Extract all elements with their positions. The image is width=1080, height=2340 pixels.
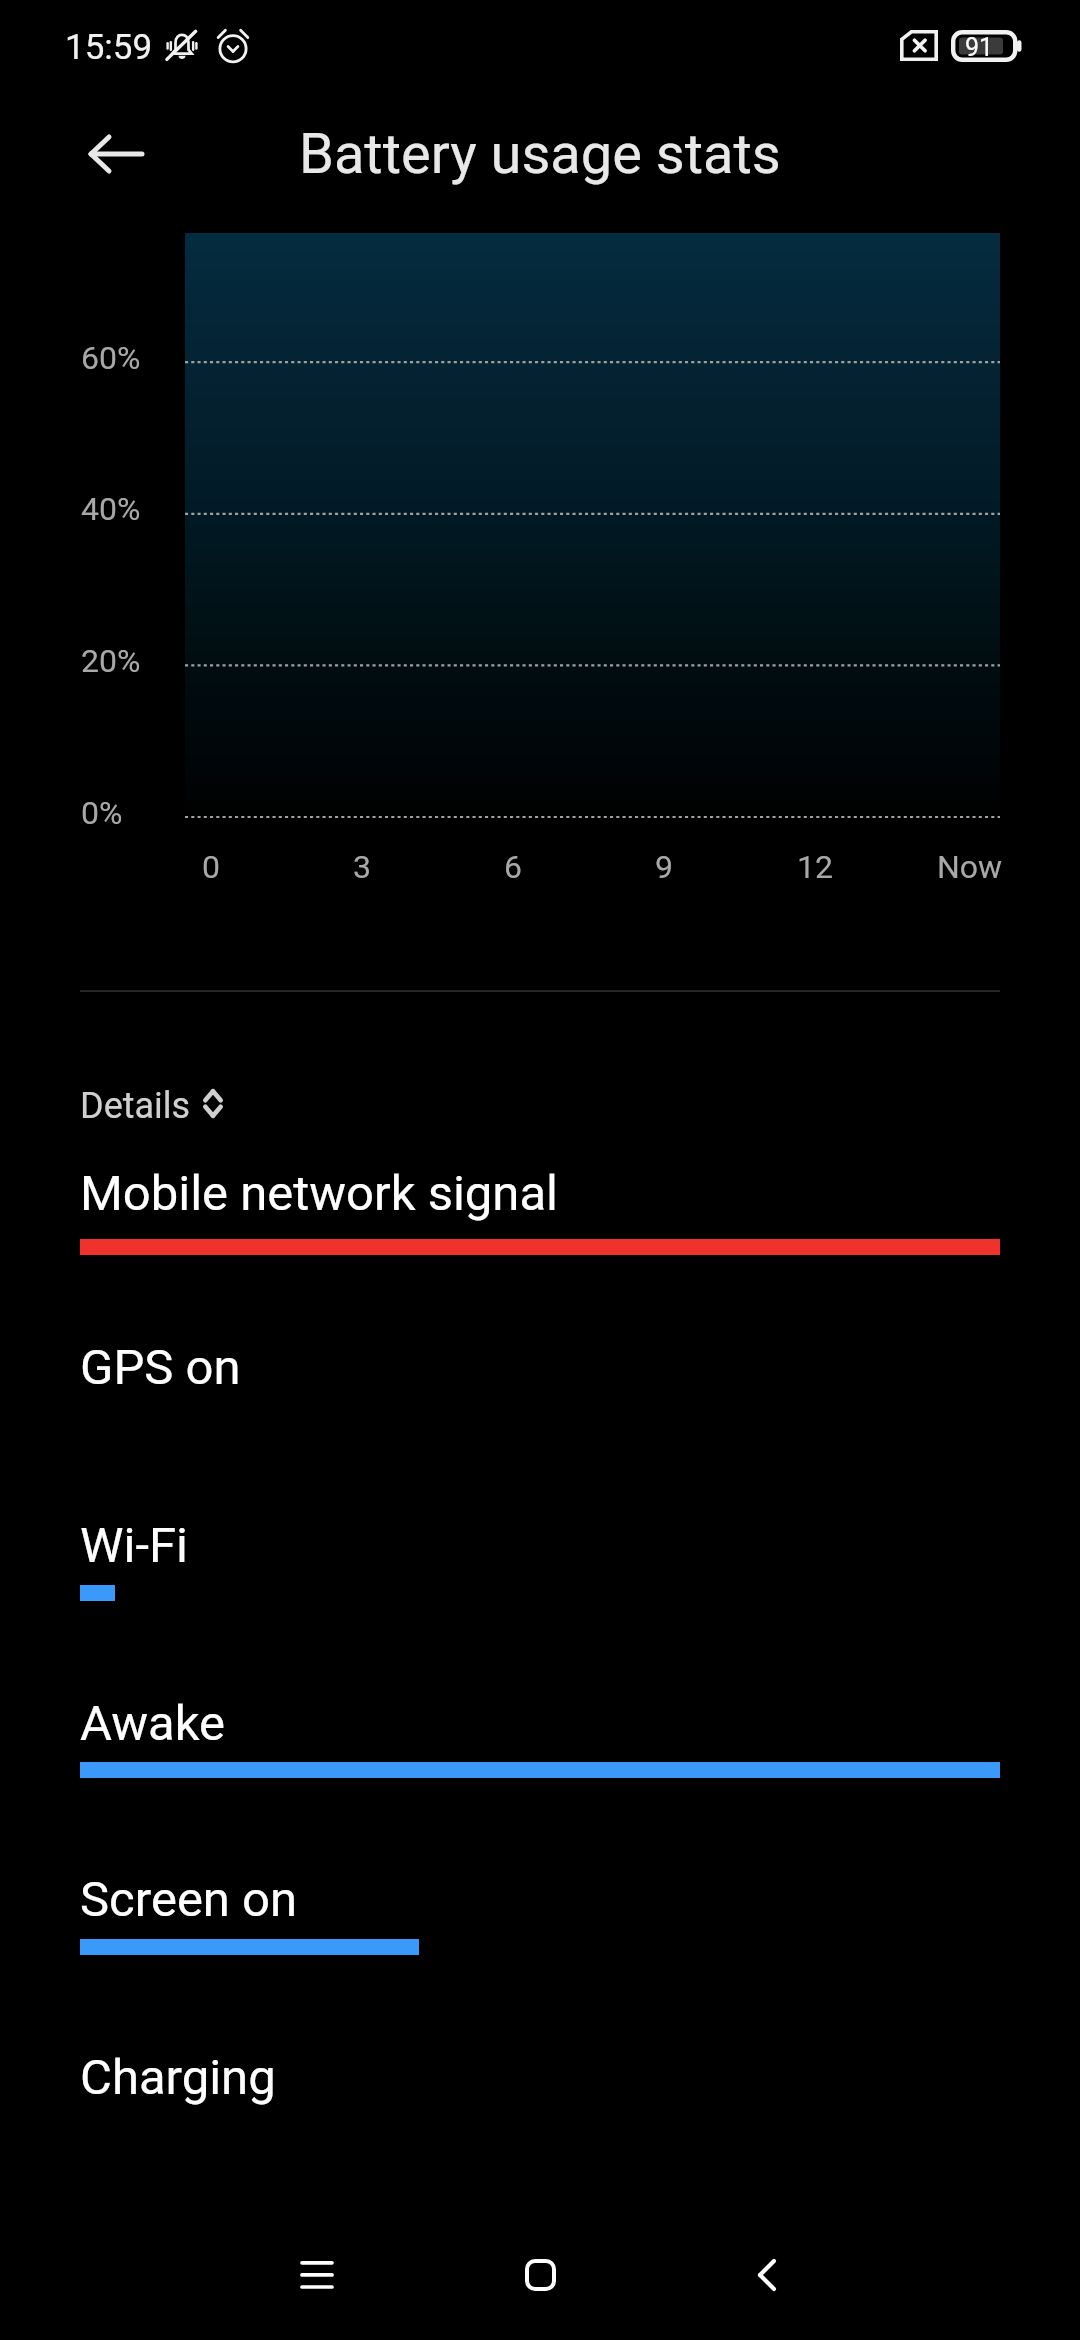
button[interactable]: Home <box>505 2235 575 2305</box>
staticText: 91 <box>965 33 994 62</box>
staticText: Now <box>937 848 1003 886</box>
staticText: Battery usage stats <box>299 121 781 187</box>
staticText: Awake <box>80 1695 225 1752</box>
button[interactable]: Details <box>80 1078 223 1134</box>
staticText: 0% <box>81 794 123 832</box>
staticText: 15:59 <box>65 27 153 68</box>
button[interactable]: Mobile network signal <box>0 1149 1080 1325</box>
button[interactable]: Back <box>60 98 172 210</box>
staticText: Mobile network signal <box>80 1165 558 1222</box>
staticText: Screen on <box>80 1871 298 1928</box>
staticText: 12 <box>797 848 833 886</box>
staticText: Charging <box>80 2049 276 2106</box>
staticText: 40% <box>81 490 141 528</box>
staticText: 9 <box>655 848 673 886</box>
button[interactable]: Screen on <box>0 1855 1080 2031</box>
staticText: 20% <box>81 642 141 680</box>
button[interactable]: Charging <box>0 2033 1080 2209</box>
staticText: Wi-Fi <box>80 1517 188 1574</box>
button[interactable]: Recent apps <box>282 2235 352 2305</box>
button[interactable]: Wi-Fi <box>0 1501 1080 1677</box>
staticText: Details <box>80 1085 191 1127</box>
staticText: 3 <box>353 848 371 886</box>
button[interactable]: GPS on <box>0 1323 1080 1499</box>
staticText: 6 <box>504 848 522 886</box>
staticText: GPS on <box>80 1339 241 1396</box>
staticText: 60% <box>81 339 141 377</box>
button[interactable]: Back <box>725 2235 795 2305</box>
staticText: 0 <box>202 848 220 886</box>
button[interactable]: Awake <box>0 1679 1080 1855</box>
